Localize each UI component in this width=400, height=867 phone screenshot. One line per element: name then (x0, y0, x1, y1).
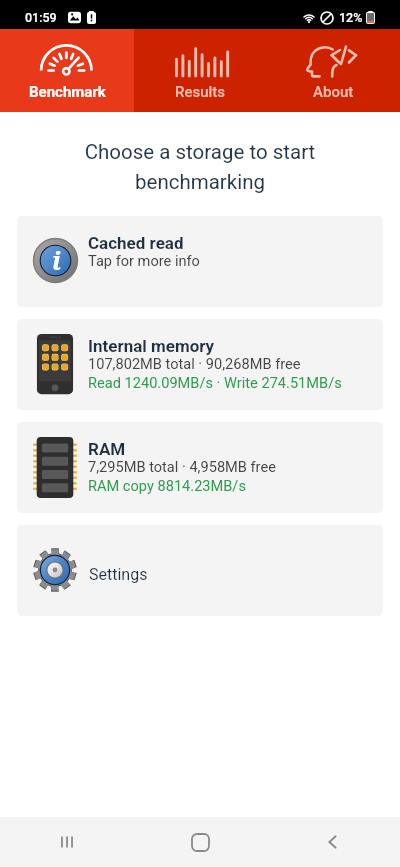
button[interactable]: Back (309, 818, 357, 866)
staticText: i (52, 243, 61, 277)
staticText: Settings (89, 565, 148, 584)
staticText: 01:59 (25, 10, 57, 25)
button[interactable]: Settings (17, 525, 383, 616)
staticText: 107,802MB total · 90,268MB free (88, 355, 301, 372)
staticText: Benchmark (29, 83, 106, 101)
staticText: RAM (88, 439, 126, 459)
button[interactable]: Benchmark (0, 29, 134, 112)
staticText: 12% (339, 10, 363, 25)
staticText: About (313, 83, 354, 101)
button[interactable]: Home (176, 818, 224, 866)
staticText: Cached read (88, 233, 184, 253)
staticText: Read 1240.09MB/s · Write 274.51MB/s (88, 374, 342, 391)
staticText: 7,295MB total · 4,958MB free (88, 458, 276, 475)
button[interactable]: Internal memory (17, 319, 383, 410)
button[interactable]: Recent apps (43, 818, 91, 866)
staticText: Choose a storage to start benchmarking (42, 140, 358, 194)
button[interactable]: i (17, 216, 383, 307)
button[interactable]: Results (134, 29, 267, 112)
staticText: Internal memory (88, 336, 215, 356)
button[interactable]: RAM (17, 422, 383, 513)
staticText: Results (175, 83, 226, 101)
button[interactable]: About (267, 29, 400, 112)
staticText: Tap for more info (88, 252, 200, 269)
staticText: RAM copy 8814.23MB/s (88, 477, 246, 494)
